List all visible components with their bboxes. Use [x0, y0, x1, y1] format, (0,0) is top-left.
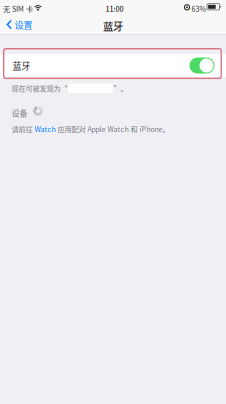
staticText: 无 SIM 卡: [3, 3, 33, 14]
staticText: 现在可被发现为“: [11, 83, 67, 93]
staticText: 设备: [11, 107, 27, 119]
staticText: 应用配对 Apple Watch 和 iPhone。: [55, 124, 169, 134]
staticText: 蓝牙: [103, 18, 123, 34]
staticText: 11:00: [105, 3, 123, 14]
button[interactable]: 设置: [4, 17, 54, 31]
staticText: Watch: [34, 124, 55, 134]
button[interactable]: 蓝牙: [0, 54, 226, 77]
staticText: ”。: [113, 83, 127, 93]
staticText: 蓝牙: [12, 59, 30, 72]
staticText: 请前往: [11, 124, 34, 134]
staticText: 63%: [191, 3, 206, 14]
button[interactable]: Watch: [34, 124, 55, 134]
staticText: 设置: [14, 18, 32, 31]
